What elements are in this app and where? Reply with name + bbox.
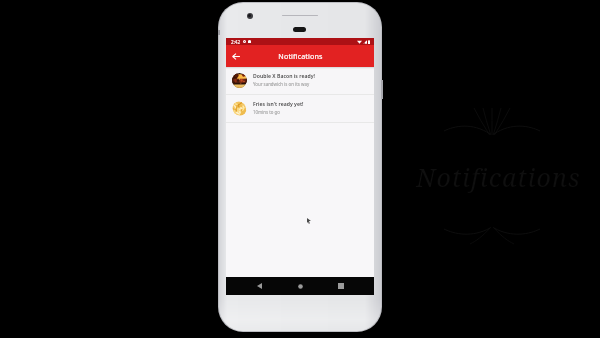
staticText: Double X Bacon is ready! xyxy=(253,73,315,80)
staticText: 2:42 xyxy=(231,39,241,45)
button[interactable]: Fries isn't ready yet! xyxy=(226,95,374,122)
staticText: Notifications xyxy=(416,160,581,194)
button[interactable]: Double X Bacon is ready! xyxy=(226,67,374,94)
button[interactable]: Recent apps xyxy=(333,278,349,294)
button[interactable]: Back xyxy=(229,49,243,63)
staticText: 10mins to go xyxy=(253,109,280,115)
button[interactable]: Home xyxy=(292,278,308,294)
staticText: Fries isn't ready yet! xyxy=(253,101,304,108)
button[interactable]: Back xyxy=(251,278,267,294)
staticText: Notifications xyxy=(278,51,323,61)
staticText: Your sandwich is on its way xyxy=(253,81,310,87)
